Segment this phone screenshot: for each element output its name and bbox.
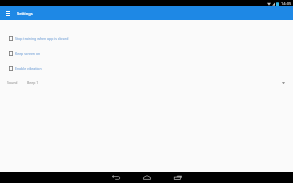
button[interactable]: Stop training when app is closed [0, 34, 293, 43]
button[interactable]: Back [100, 172, 131, 183]
staticText: Settings [17, 11, 33, 16]
staticText: 14:05 [281, 1, 292, 6]
staticText: Keep screen on [15, 51, 41, 56]
button[interactable]: Home [131, 172, 162, 183]
button[interactable]: Enable vibration [0, 64, 293, 73]
staticText: Stop training when app is closed [15, 36, 69, 41]
staticText: Enable vibration [15, 66, 42, 71]
button[interactable]: Open navigation drawer [0, 6, 16, 20]
staticText: Sound [7, 80, 18, 85]
button[interactable]: Sound [0, 80, 293, 91]
button[interactable]: Keep screen on [0, 49, 293, 58]
staticText: Beep 1 [27, 80, 39, 85]
button[interactable]: Recent apps [162, 172, 193, 183]
